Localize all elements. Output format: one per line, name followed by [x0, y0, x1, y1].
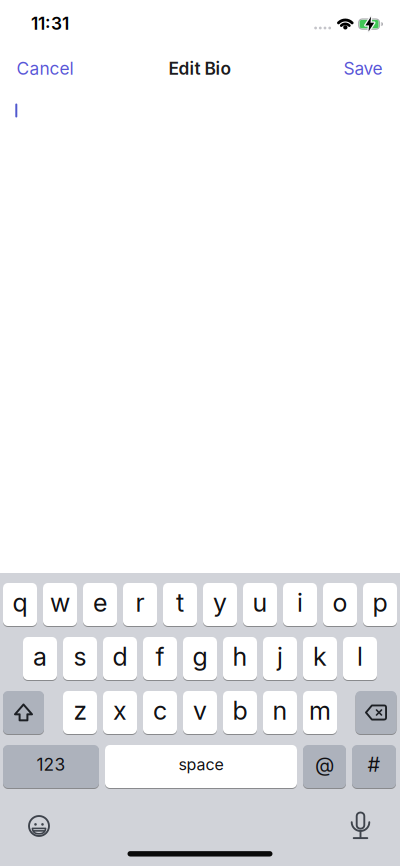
button[interactable]: f [143, 636, 177, 680]
staticText: m [309, 696, 331, 725]
staticText: w [50, 588, 70, 617]
button[interactable]: o [323, 582, 357, 626]
staticText: q [12, 588, 27, 617]
staticText: r [135, 588, 144, 617]
button[interactable]: g [183, 636, 217, 680]
button[interactable]: e [83, 582, 117, 626]
staticText: Cancel [16, 58, 73, 79]
button[interactable]: d [103, 636, 137, 680]
staticText: v [193, 696, 207, 725]
staticText: 11:31 [31, 13, 69, 34]
staticText: o [332, 588, 347, 617]
button[interactable]: @ [303, 744, 346, 788]
staticText: d [112, 642, 127, 671]
button[interactable]: t [163, 582, 197, 626]
staticText: Save [343, 58, 382, 79]
staticText: e [93, 588, 107, 617]
button[interactable]: s [63, 636, 97, 680]
staticText: space [178, 755, 223, 774]
button[interactable]: Dictate [346, 810, 374, 840]
button[interactable]: q [3, 582, 37, 626]
staticText: c [153, 696, 167, 725]
button[interactable]: j [263, 636, 297, 680]
button[interactable]: b [223, 690, 257, 734]
button[interactable]: u [243, 582, 277, 626]
button[interactable]: w [43, 582, 77, 626]
button[interactable]: y [203, 582, 237, 626]
staticText: f [155, 642, 164, 671]
staticText: @ [315, 753, 334, 776]
staticText: 123 [36, 754, 65, 775]
button[interactable]: n [263, 690, 297, 734]
button[interactable]: k [303, 636, 337, 680]
button[interactable]: Delete [355, 690, 396, 734]
staticText: k [313, 642, 327, 671]
button[interactable]: z [63, 690, 97, 734]
button[interactable]: h [223, 636, 257, 680]
button[interactable]: i [283, 582, 317, 626]
staticText: Edit Bio [168, 58, 231, 79]
button[interactable]: space [105, 744, 297, 788]
staticText: y [213, 588, 227, 617]
button[interactable]: x [103, 690, 137, 734]
button[interactable]: # [352, 744, 396, 788]
staticText: l [357, 642, 363, 671]
button[interactable]: l [343, 636, 377, 680]
button[interactable]: p [363, 582, 397, 626]
button[interactable]: m [303, 690, 337, 734]
button[interactable]: Save [343, 58, 382, 79]
button[interactable]: Emoji [24, 811, 54, 841]
button[interactable]: v [183, 690, 217, 734]
staticText: h [232, 642, 247, 671]
staticText: p [372, 588, 387, 617]
staticText: t [176, 588, 184, 617]
button[interactable]: 123 [3, 744, 99, 788]
staticText: g [192, 642, 207, 671]
staticText: a [33, 642, 47, 671]
staticText: n [272, 696, 287, 725]
button[interactable]: Cancel [16, 58, 73, 79]
staticText: x [113, 696, 127, 725]
staticText: z [73, 696, 86, 725]
staticText: b [232, 696, 247, 725]
staticText: # [367, 753, 380, 776]
staticText: u [252, 588, 267, 617]
button[interactable]: Shift [3, 690, 44, 734]
staticText: s [73, 642, 86, 671]
staticText: i [297, 588, 303, 617]
staticText: j [277, 642, 283, 671]
button[interactable]: a [23, 636, 57, 680]
button[interactable]: c [143, 690, 177, 734]
button[interactable]: r [123, 582, 157, 626]
